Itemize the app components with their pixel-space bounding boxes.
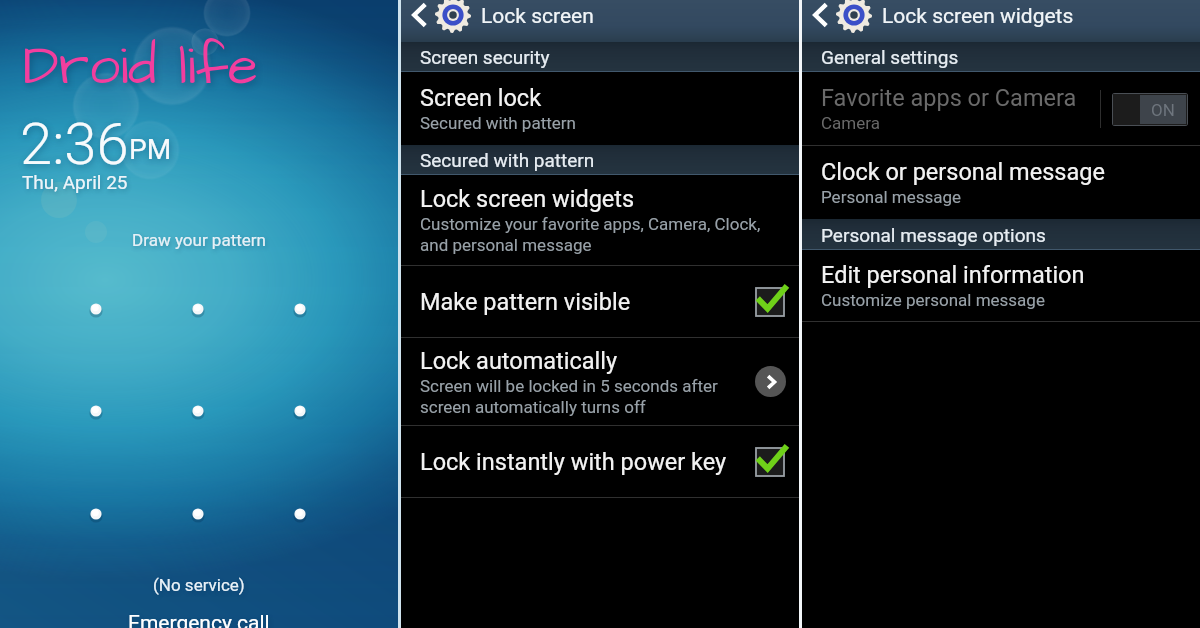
staticText: Lock screen widgets <box>882 4 1074 29</box>
staticText: Clock or personal message <box>821 158 1105 186</box>
staticText: Personal message options <box>821 224 1046 246</box>
staticText: 2:36 <box>20 110 129 178</box>
staticText: Secured with pattern <box>420 149 595 171</box>
staticText: PM <box>129 133 172 166</box>
button[interactable]: Make pattern visible <box>401 266 799 337</box>
button[interactable]: Checked <box>755 447 785 477</box>
staticText: Lock screen <box>481 4 594 29</box>
button[interactable]: Edit personal information <box>802 250 1200 321</box>
button[interactable]: Screen lock <box>401 72 799 145</box>
staticText: Personal message <box>821 187 962 207</box>
button[interactable]: Lock screen widgets <box>401 175 799 265</box>
staticText: Lock screen widgets <box>420 185 635 213</box>
staticText: Droid life <box>23 29 258 105</box>
button[interactable]: Emergency call <box>128 611 270 628</box>
staticText: Lock automatically <box>420 347 618 375</box>
staticText: ON <box>1151 100 1175 120</box>
button[interactable]: More options <box>755 366 786 397</box>
staticText: General settings <box>821 46 959 68</box>
button[interactable]: Back <box>805 0 835 30</box>
button[interactable]: Toggle on <box>1112 93 1188 126</box>
button[interactable]: Favorite apps or Camera <box>802 72 1200 145</box>
staticText: Edit personal information <box>821 261 1085 289</box>
staticText: Screen security <box>420 46 550 68</box>
button[interactable]: Clock or personal message <box>802 146 1200 219</box>
staticText: Customize personal message <box>821 290 1045 310</box>
staticText: Screen lock <box>420 84 542 112</box>
staticText: Secured with pattern <box>420 113 576 133</box>
staticText: Favorite apps or Camera <box>821 84 1077 112</box>
button[interactable]: Back <box>404 0 434 30</box>
staticText: Lock instantly with power key <box>420 448 727 476</box>
staticText: Camera <box>821 113 880 133</box>
staticText: (No service) <box>153 575 245 595</box>
button[interactable]: Checked <box>755 287 785 317</box>
staticText: Thu, April 25 <box>22 171 128 193</box>
button[interactable]: Lock automatically <box>401 338 799 425</box>
button[interactable]: Lock instantly with power key <box>401 426 799 497</box>
staticText: Screen will be locked in 5 seconds after… <box>420 376 718 417</box>
staticText: Make pattern visible <box>420 288 631 316</box>
staticText: Draw your pattern <box>0 230 398 250</box>
staticText: Customize your favorite apps, Camera, Cl… <box>420 214 761 255</box>
